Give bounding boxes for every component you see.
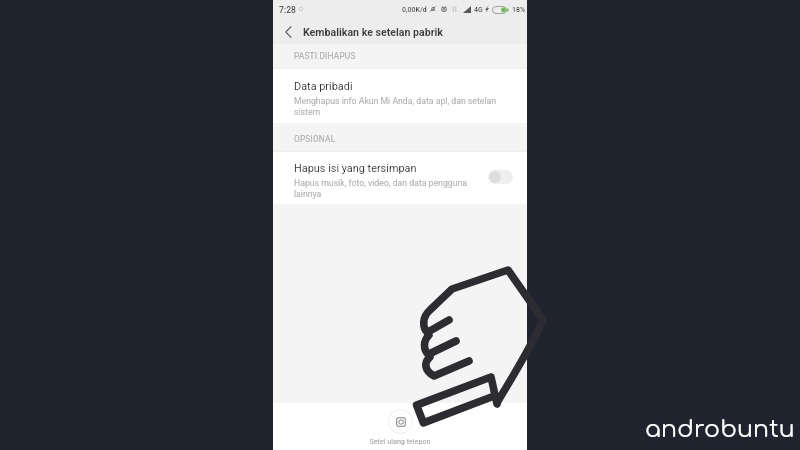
staticText: 18% <box>512 6 526 14</box>
button[interactable]: Back <box>273 19 303 44</box>
button[interactable]: Hapus isi yang tersimpan <box>273 152 527 204</box>
staticText: PASTI DIHAPUS <box>294 51 356 61</box>
staticText: Kembalikan ke setelan pabrik <box>303 26 443 38</box>
staticText: Menghapus info Akun Mi Anda, data apl, d… <box>294 96 497 117</box>
button[interactable]: Hapus isi yang tersimpan toggle <box>488 170 513 184</box>
staticText: Hapus isi yang tersimpan <box>294 162 417 175</box>
staticText: 0,00K/d <box>402 6 427 14</box>
staticText: Hapus musik, foto, video, dan data pengg… <box>294 178 467 199</box>
staticText: 7:28 <box>279 5 296 15</box>
button[interactable]: Data pribadi <box>273 69 527 123</box>
button[interactable]: Setel ulang telepon <box>369 403 431 445</box>
staticText: OPSIONAL <box>294 134 336 144</box>
staticText: Data pribadi <box>294 80 353 93</box>
staticText: Setel ulang telepon <box>369 437 431 445</box>
staticText: androbuntu <box>645 416 795 442</box>
staticText: 4G <box>474 6 483 14</box>
